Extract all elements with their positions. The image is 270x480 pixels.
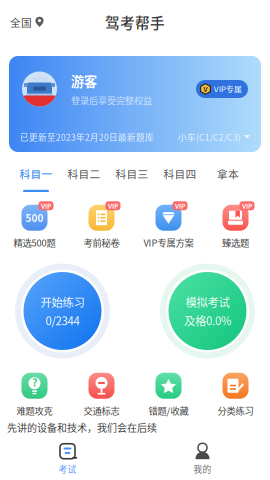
button[interactable]: 我的 — [135, 438, 270, 480]
staticText: VIP — [175, 201, 185, 211]
staticText: 科目四 — [163, 166, 196, 181]
staticText: 小车(C1/C2/C3) — [178, 131, 241, 143]
staticText: 及格0.0% — [184, 312, 231, 328]
button[interactable]: VIP — [202, 203, 269, 251]
button[interactable]: 游客 — [9, 44, 261, 152]
button[interactable]: 科目一 — [12, 166, 60, 192]
button[interactable]: ? — [1, 371, 68, 419]
button[interactable]: 500 — [1, 203, 68, 251]
button[interactable]: 交通标志 — [68, 371, 135, 419]
staticText: 错题/收藏 — [148, 404, 188, 417]
button[interactable]: 考试 — [0, 438, 135, 480]
staticText: 驾考帮手 — [105, 11, 165, 33]
staticText: 开始练习 — [40, 294, 84, 310]
button[interactable]: 科目三 — [108, 166, 156, 192]
button[interactable]: VIP — [135, 203, 202, 251]
staticText: ? — [32, 374, 37, 389]
staticText: VIP — [242, 201, 252, 211]
button[interactable]: 科目二 — [60, 166, 108, 192]
staticText: 模拟考试 — [185, 294, 229, 310]
button[interactable]: 错题/收藏 — [135, 371, 202, 419]
button[interactable]: 全国 — [0, 7, 54, 37]
staticText: V — [203, 84, 207, 94]
staticText: 分类练习 — [217, 404, 253, 417]
staticText: 已更新至2023年2月20日最新题库 — [20, 131, 154, 143]
button[interactable]: 科目四 — [156, 166, 204, 192]
staticText: 我的 — [193, 463, 211, 475]
button[interactable]: 拿本 — [204, 166, 252, 192]
staticText: 0/2344 — [45, 312, 79, 328]
staticText: VIP — [108, 201, 118, 211]
staticText: 精选500题 — [13, 236, 55, 249]
staticText: 科目三 — [115, 166, 148, 181]
staticText: 登录后享受完整权益 — [71, 93, 152, 107]
staticText: VIP专属方案 — [143, 236, 193, 249]
staticText: 科目二 — [67, 166, 100, 181]
staticText: 考试 — [58, 463, 76, 475]
button[interactable]: VIP — [68, 203, 135, 251]
staticText: VIP — [41, 201, 51, 211]
staticText: 科目一 — [19, 166, 52, 181]
staticText: 交通标志 — [83, 404, 119, 417]
button[interactable]: 分类练习 — [202, 371, 269, 419]
staticText: 难题攻克 — [16, 404, 52, 417]
button[interactable]: 开始练习 — [15, 263, 110, 358]
staticText: VIP专属 — [214, 83, 242, 95]
staticText: 500 — [25, 210, 43, 225]
staticText: 臻选题 — [222, 236, 249, 249]
staticText: 全国 — [10, 14, 32, 30]
button[interactable]: 模拟考试 — [160, 263, 255, 358]
staticText: 拿本 — [217, 166, 239, 181]
staticText: 游客 — [71, 71, 97, 90]
staticText: 考前秘卷 — [83, 236, 119, 249]
staticText: 先讲的设备和技术，我们会在后续 — [7, 420, 157, 435]
